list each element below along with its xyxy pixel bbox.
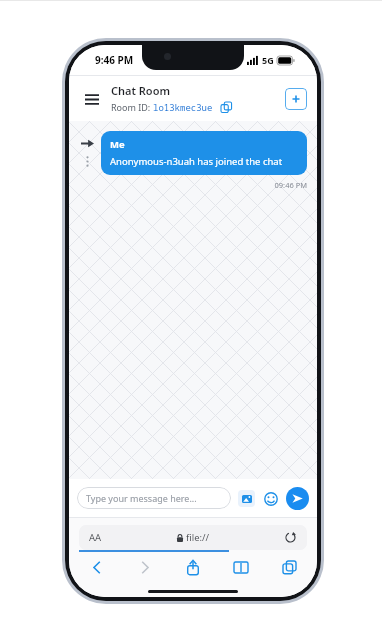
button[interactable]: New chat xyxy=(285,88,307,110)
button[interactable]: Me xyxy=(101,131,307,175)
button[interactable]: Forward xyxy=(131,553,159,581)
button[interactable]: Attach image xyxy=(238,490,255,507)
button[interactable]: Reload xyxy=(284,531,297,544)
button[interactable]: Emoji xyxy=(262,490,279,507)
staticText: Room ID: xyxy=(111,101,153,113)
button[interactable]: Tabs xyxy=(275,553,303,581)
staticText: 09:46 PM xyxy=(101,180,307,190)
button[interactable]: Back xyxy=(83,553,111,581)
staticText: Me xyxy=(110,138,125,151)
button[interactable]: More options xyxy=(80,154,94,168)
button[interactable]: Bookmarks xyxy=(227,553,255,581)
button[interactable]: Forward xyxy=(79,135,95,151)
button[interactable]: Menu xyxy=(79,86,105,112)
staticText: Chat Room xyxy=(111,83,171,98)
button[interactable]: Share xyxy=(179,553,207,581)
staticText: 5G xyxy=(262,54,274,66)
button[interactable]: Send xyxy=(286,487,309,510)
staticText: AA xyxy=(89,531,102,544)
button[interactable]: Copy room ID xyxy=(219,100,233,114)
staticText: Anonymous-n3uah has joined the chat xyxy=(110,155,283,168)
button[interactable]: AA xyxy=(79,525,307,550)
staticText: lo13kmec3ue xyxy=(153,101,213,113)
button[interactable]: Type your message here... xyxy=(77,487,231,509)
staticText: Type your message here... xyxy=(86,492,197,504)
staticText: 9:46 PM xyxy=(95,53,134,67)
staticText: file:// xyxy=(186,531,210,544)
